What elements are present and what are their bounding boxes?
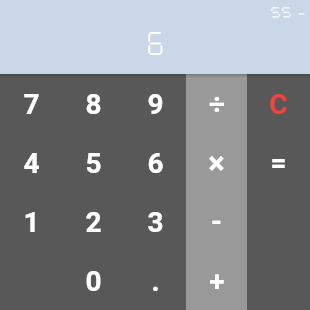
button[interactable]: . <box>124 251 186 310</box>
staticText: - <box>211 205 222 238</box>
staticText: 5 <box>85 147 102 180</box>
button[interactable]: C <box>247 74 310 133</box>
staticText: 3 <box>147 206 164 239</box>
staticText: C <box>269 88 288 121</box>
staticText: ÷ <box>209 88 225 121</box>
staticText: 2 <box>85 206 102 239</box>
button[interactable]: 0 <box>62 251 124 310</box>
staticText: × <box>208 145 225 181</box>
button[interactable]: Equals <box>247 133 310 310</box>
button[interactable]: 2 <box>62 192 124 251</box>
staticText: 0 <box>85 265 102 298</box>
button[interactable]: 8 <box>62 74 124 133</box>
staticText: 4 <box>23 147 40 180</box>
staticText: 7 <box>23 88 40 121</box>
button[interactable]: 4 <box>0 133 62 192</box>
button[interactable]: 6 <box>124 133 186 192</box>
staticText: 1 <box>23 206 40 239</box>
staticText: 6 <box>147 147 164 180</box>
button[interactable]: 5 <box>62 133 124 192</box>
staticText: . <box>151 265 160 298</box>
button[interactable]: Add <box>186 251 247 310</box>
staticText: 9 <box>147 88 164 121</box>
staticText: 8 <box>85 88 102 121</box>
other: Display showing 6 <box>0 0 310 74</box>
button[interactable]: 3 <box>124 192 186 251</box>
staticText: = <box>270 146 287 179</box>
button[interactable]: Subtract <box>186 192 247 251</box>
button[interactable]: 9 <box>124 74 186 133</box>
button[interactable]: Multiply <box>186 133 247 192</box>
button[interactable]: 7 <box>0 74 62 133</box>
button[interactable]: Divide <box>186 74 247 133</box>
button[interactable]: 1 <box>0 192 62 251</box>
staticText: + <box>209 265 225 298</box>
